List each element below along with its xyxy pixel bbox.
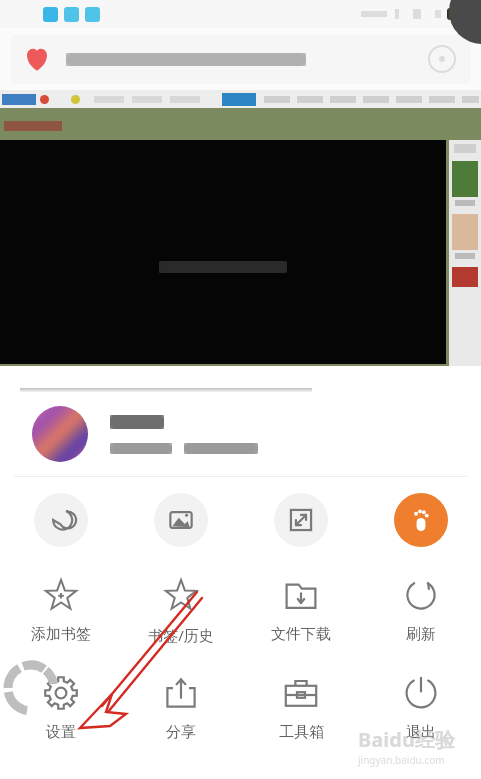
staticText: Baidu经验 bbox=[358, 726, 455, 753]
staticText: 分享 bbox=[166, 723, 196, 742]
staticText: 工具箱 bbox=[279, 723, 324, 742]
button[interactable]: 添加书签 bbox=[0, 563, 121, 661]
staticText: 添加书签 bbox=[31, 625, 91, 644]
button[interactable]: 文件下载 bbox=[241, 563, 361, 661]
button[interactable]: 刷新 bbox=[361, 563, 481, 661]
staticText: 退出 bbox=[406, 723, 436, 742]
button[interactable]: Baidu home bbox=[394, 493, 448, 547]
button[interactable]: Night mode bbox=[34, 493, 88, 547]
button[interactable]: No image mode bbox=[154, 493, 208, 547]
staticText: 设置 bbox=[46, 723, 76, 742]
staticText: jingyan.baidu.com bbox=[358, 753, 445, 767]
button[interactable]: 退出 bbox=[361, 661, 481, 759]
button[interactable]: Full screen bbox=[274, 493, 328, 547]
button[interactable]: 分享 bbox=[121, 661, 241, 759]
staticText: 书签/历史 bbox=[148, 625, 214, 645]
staticText: 刷新 bbox=[406, 625, 436, 644]
button[interactable]: 工具箱 bbox=[241, 661, 361, 759]
button[interactable]: 设置 bbox=[0, 661, 121, 759]
button[interactable] bbox=[0, 392, 481, 476]
button[interactable]: 书签/历史 bbox=[121, 563, 241, 661]
staticText: 文件下载 bbox=[271, 625, 331, 644]
